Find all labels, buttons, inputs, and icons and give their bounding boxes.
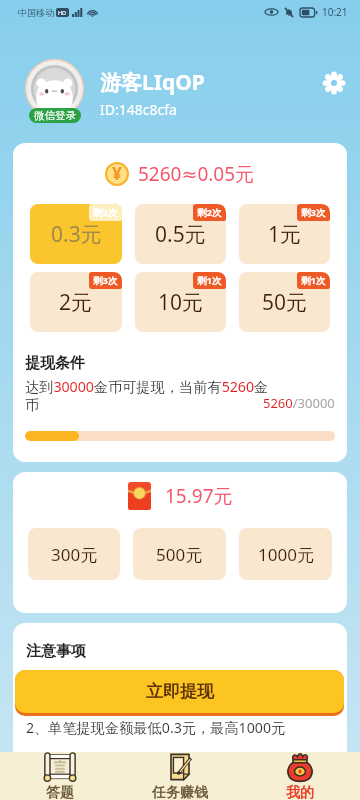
staticText: 游客LIqOP (100, 68, 205, 97)
staticText: 剩2次 (93, 206, 118, 219)
button[interactable]: 微信登录 (29, 108, 81, 123)
staticText: 达到30000金币可提现，当前有5260金币 (25, 377, 272, 415)
button[interactable]: 2元 (30, 272, 122, 332)
staticText: 立即提现 (146, 681, 214, 702)
button[interactable]: 0.3元 (30, 204, 122, 264)
staticText: 注意事项 (26, 642, 86, 661)
staticText: 剩3次 (93, 274, 118, 287)
button[interactable]: 50元 (239, 272, 330, 332)
staticText: 2、单笔提现金额最低0.3元，最高1000元 (26, 718, 286, 737)
staticText: 剩3次 (301, 206, 326, 219)
staticText: 15.97元 (165, 483, 233, 509)
staticText: 0.5元 (155, 220, 206, 249)
staticText: 0.3元 (51, 220, 102, 249)
staticText: 1000元 (258, 543, 314, 566)
staticText: 10元 (158, 288, 204, 317)
staticText: 答题 (46, 784, 74, 800)
staticText: 任务赚钱 (152, 784, 208, 800)
staticText: 300元 (51, 543, 98, 566)
staticText: 剩1次 (197, 274, 222, 287)
staticText: ID:148c8cfa (100, 100, 177, 119)
staticText: 剩1次 (301, 274, 326, 287)
staticText: 2元 (59, 288, 93, 317)
button[interactable]: 任务赚钱 (120, 752, 240, 800)
staticText: 1元 (268, 220, 302, 249)
button[interactable]: 10元 (135, 272, 226, 332)
staticText: ¥ (112, 162, 122, 186)
button[interactable]: 答题 (0, 752, 120, 800)
staticText: 提现条件 (25, 354, 85, 373)
staticText: 5260≈0.05元 (138, 161, 255, 187)
button[interactable]: Settings (316, 65, 352, 101)
staticText: 我的 (286, 784, 314, 800)
staticText: 50元 (262, 288, 308, 317)
button[interactable]: 1000元 (239, 528, 332, 580)
staticText: 10:21 (322, 5, 348, 19)
button[interactable]: 0.5元 (135, 204, 226, 264)
staticText: 剩2次 (197, 206, 222, 219)
staticText: 微信登录 (34, 109, 76, 122)
button[interactable]: 300元 (28, 528, 120, 580)
button[interactable]: 我的 (240, 752, 360, 800)
button[interactable]: 1元 (239, 204, 330, 264)
staticText: 500元 (156, 543, 203, 566)
staticText: HD (58, 9, 67, 16)
button[interactable]: 500元 (133, 528, 226, 580)
button[interactable]: 立即提现 (15, 670, 344, 713)
staticText: 中国移动 (18, 7, 54, 18)
staticText: 5260/30000 (263, 394, 335, 412)
